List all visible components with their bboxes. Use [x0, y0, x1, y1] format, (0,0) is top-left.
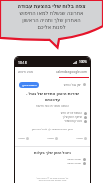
button[interactable]: תובנה — [47, 137, 58, 140]
button[interactable]: תכונה חדשה — [23, 161, 86, 165]
staticText: 10:18 — [18, 60, 27, 65]
button[interactable]: סנכרון אוטומטי — [21, 119, 87, 123]
staticText: הוספת אירוע — [22, 83, 37, 87]
staticText: צפה בלוח שלי בהצעת עבודה — [3, 2, 100, 9]
staticText: הוספנו מספר תכונות חדשות — [18, 104, 87, 108]
button[interactable]: תובנה — [76, 137, 87, 140]
staticText: אחרונה שנשלח למאו החיפוש — [3, 9, 100, 16]
staticText: היומן החדש מאפשר לך לנהל את הזמן — [21, 127, 84, 131]
staticText: מנוע חיפוש — [18, 70, 34, 74]
button[interactable]: תובנה — [18, 137, 29, 140]
staticText: תכונה חדשה — [67, 157, 81, 161]
staticText: הוספת אירוע חדש — [60, 111, 82, 115]
staticText: יומן גוגל החדש — [63, 83, 81, 87]
button[interactable]: הוספת אירוע חדש — [21, 111, 87, 115]
button[interactable]: הוספת אירוע — [19, 82, 39, 88]
staticText: תובנה — [18, 137, 25, 140]
staticText: תובנה — [47, 137, 54, 140]
staticText: calendar.google.com — [55, 70, 87, 74]
button[interactable]: שיתוף היומן שלך — [21, 115, 87, 119]
staticText: 100% — [78, 60, 87, 64]
staticText: סנכרון אוטומטי — [64, 119, 82, 123]
staticText: ניהול הזמן שלך בקלות — [18, 150, 87, 155]
staticText: תכונה חדשה — [67, 161, 81, 165]
staticText: האחרון שלך ותהיה הראשון — [3, 16, 100, 23]
staticText: לפנות אליכם — [3, 23, 100, 30]
staticText: שיתוף היומן שלך — [62, 115, 82, 119]
button[interactable]: תכונה חדשה — [23, 157, 86, 161]
staticText: שירות היומן החדש של גוגל - עדכונים — [18, 91, 87, 102]
staticText: כל הזכויות שמורות © 2024 גוגל תנאי שימוש… — [19, 176, 86, 182]
staticText: תובנה — [76, 137, 83, 140]
